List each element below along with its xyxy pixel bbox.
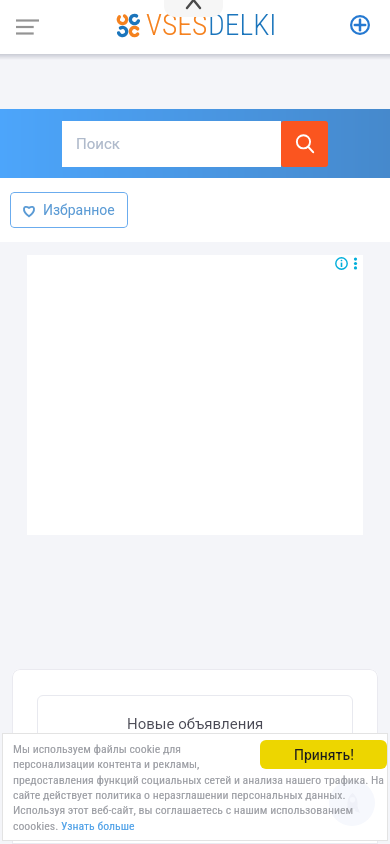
- button[interactable]: Принять!: [260, 740, 387, 769]
- staticText: сайте действует политика о неразглашении…: [13, 788, 346, 802]
- button[interactable]: Collapse: [164, 0, 223, 17]
- staticText: Принять!: [294, 747, 354, 763]
- button[interactable]: Add listing: [345, 10, 375, 40]
- staticText: VSES: [146, 8, 208, 43]
- staticText: предоставления функций социальных сетей …: [13, 773, 384, 787]
- staticText: Избранное: [43, 202, 115, 218]
- button[interactable]: Search: [281, 121, 328, 167]
- button[interactable]: Избранное: [10, 192, 128, 228]
- staticText: coookies.: [13, 819, 61, 833]
- staticText: Используя этот веб-сайт, вы соглашаетесь…: [13, 803, 354, 817]
- button[interactable]: Scroll to top: [329, 780, 375, 826]
- staticText: DELKI: [208, 8, 277, 43]
- staticText: Новые объявления: [127, 715, 264, 733]
- button[interactable]: Узнать больше: [61, 819, 135, 833]
- button[interactable]: Ad options: [335, 257, 358, 270]
- staticText: персонализации контента и рекламы,: [13, 757, 200, 771]
- button[interactable]: Menu: [9, 9, 45, 45]
- staticText: Поиск: [76, 135, 120, 153]
- staticText: Мы используем файлы cookie для: [13, 742, 181, 756]
- button[interactable]: Поиск: [62, 121, 281, 167]
